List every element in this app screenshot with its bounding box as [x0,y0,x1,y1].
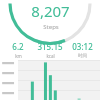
staticText: 315.15 [37,41,63,52]
button[interactable]: 03:12 [66,40,98,60]
staticText: km [15,53,22,59]
staticText: 6.2 [12,41,24,52]
staticText: Steps [43,23,59,31]
button[interactable]: 315.15 [34,40,66,60]
button[interactable]: Activity chart [0,60,100,100]
staticText: kcal [46,53,55,59]
button[interactable]: 8,207 [0,0,100,40]
staticText: 03:12 [72,41,93,52]
staticText: 8,207 [31,1,70,21]
staticText: 时间 [78,53,87,59]
button[interactable]: 6.2 [2,40,34,60]
